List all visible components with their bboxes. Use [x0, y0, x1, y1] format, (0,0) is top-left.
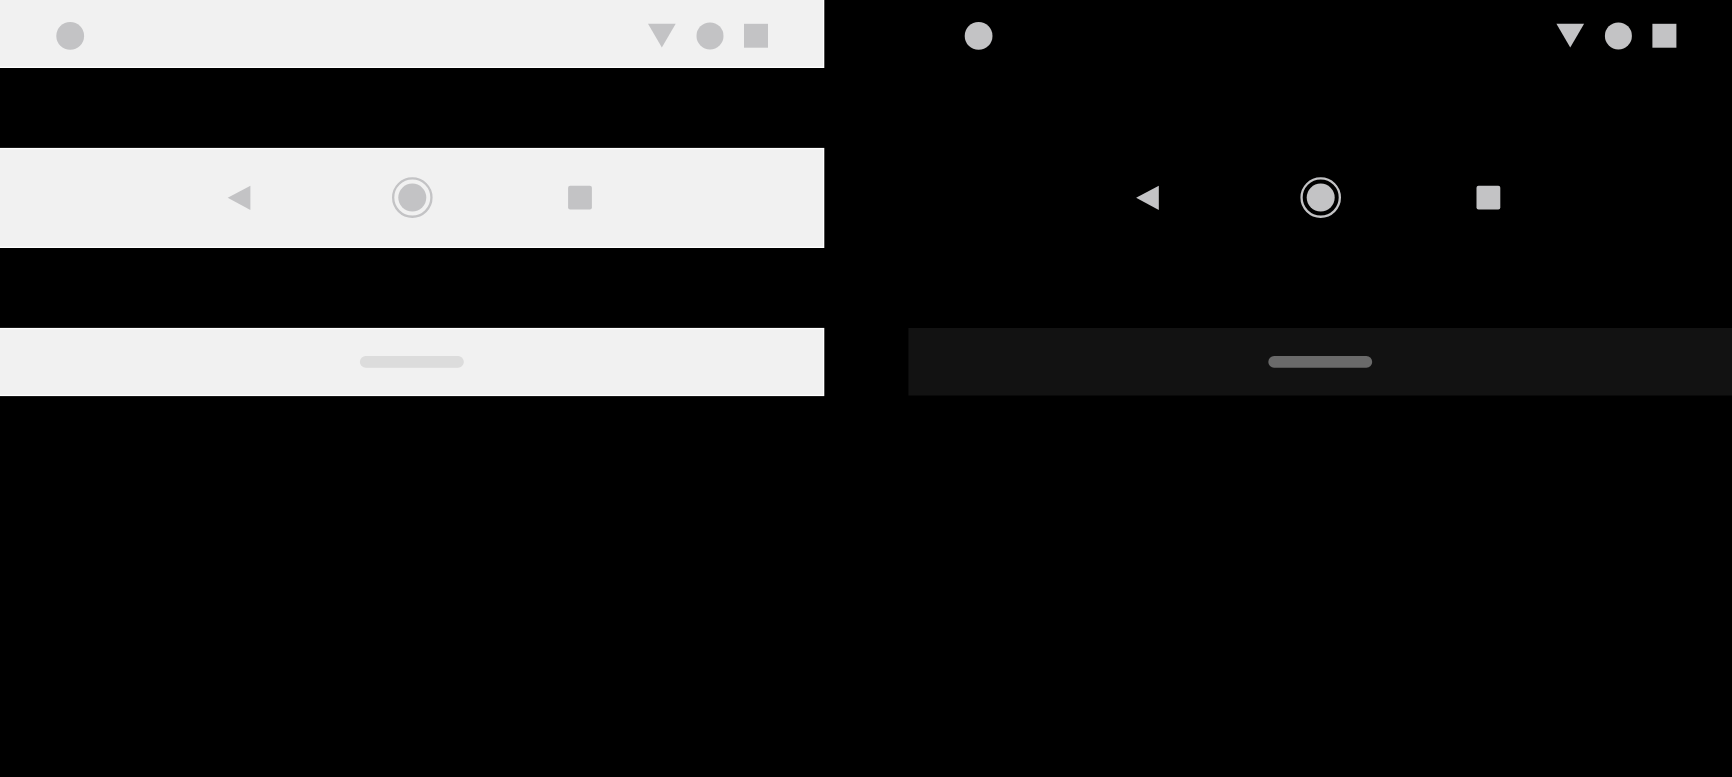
button[interactable]: Home: [1288, 149, 1352, 247]
button[interactable]: Home gesture handle: [1248, 329, 1392, 395]
button[interactable]: Recent apps: [1456, 149, 1520, 247]
button[interactable]: Front camera: [48, 14, 92, 58]
button[interactable]: Status icons: [1544, 8, 1688, 60]
button[interactable]: Status icons: [636, 8, 780, 60]
button[interactable]: Back: [214, 149, 278, 247]
button[interactable]: Home: [380, 149, 444, 247]
button[interactable]: Recent apps: [548, 149, 612, 247]
button[interactable]: Home gesture handle: [340, 329, 484, 395]
button[interactable]: Back: [1122, 149, 1186, 247]
button[interactable]: Front camera: [956, 14, 1000, 58]
